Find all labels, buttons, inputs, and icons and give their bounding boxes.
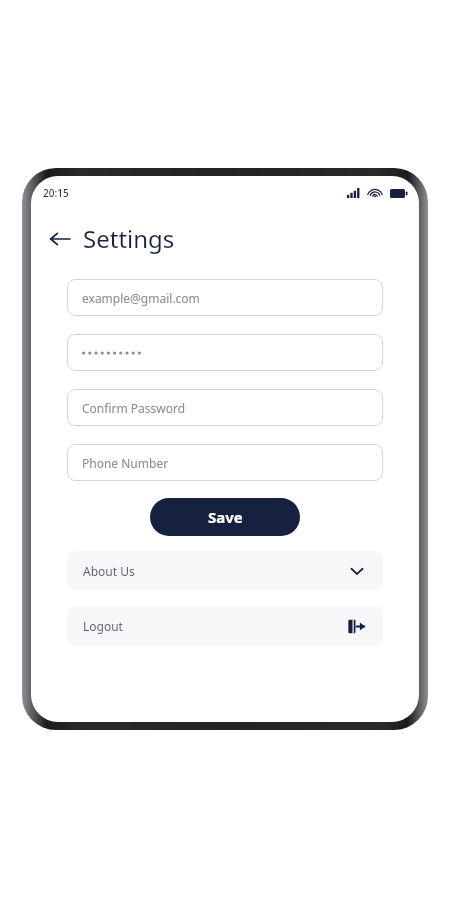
staticText: Save — [208, 507, 243, 527]
staticText: About Us — [83, 563, 135, 579]
button[interactable]: Confirm Password — [67, 389, 383, 426]
staticText: Settings — [83, 222, 175, 255]
button[interactable]: About Us — [67, 551, 383, 590]
staticText: Logout — [83, 618, 123, 634]
button[interactable]: Back — [44, 223, 76, 255]
button[interactable]: Phone Number — [67, 444, 383, 481]
staticText: Confirm Password — [82, 400, 186, 416]
staticText: 20:15 — [43, 186, 69, 200]
button[interactable]: example@gmail.com — [67, 279, 383, 316]
other: Expand About Us — [347, 561, 367, 581]
button[interactable]: Logout — [67, 606, 383, 646]
staticText: example@gmail.com — [82, 290, 200, 306]
other: Logout — [345, 615, 367, 637]
button[interactable] — [67, 334, 383, 371]
button[interactable]: Save — [150, 498, 300, 536]
staticText: Phone Number — [82, 455, 169, 471]
